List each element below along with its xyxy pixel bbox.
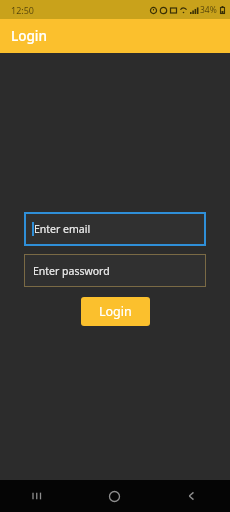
button[interactable]: Recents [0, 480, 76, 512]
staticText: Enter email [34, 222, 91, 236]
staticText: 12:50 [11, 4, 35, 16]
button[interactable]: Back [153, 480, 230, 512]
button[interactable]: Login [81, 297, 150, 326]
button[interactable]: Enter email [24, 212, 206, 246]
staticText: Login [99, 303, 132, 320]
staticText: Enter password [33, 264, 110, 278]
button[interactable]: Home [76, 480, 153, 512]
staticText: 34% [200, 4, 217, 16]
staticText: Login [11, 27, 47, 45]
button[interactable]: Enter password [24, 254, 206, 287]
